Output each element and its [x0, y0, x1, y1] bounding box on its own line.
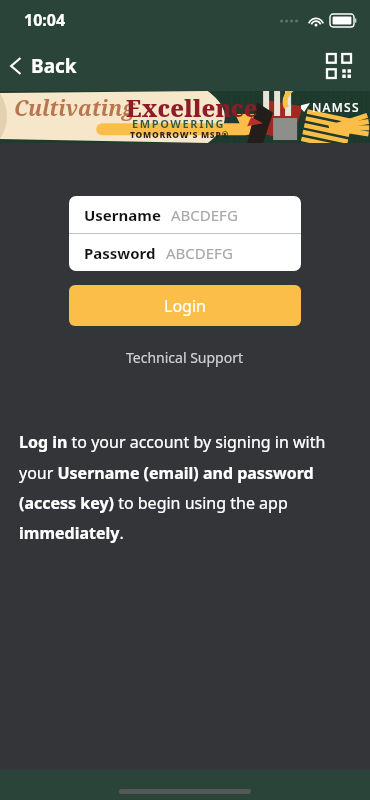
button[interactable]: Login — [69, 285, 301, 326]
button[interactable]: Username — [69, 196, 301, 233]
staticText: TOMORROW'S MSP® — [130, 129, 230, 141]
staticText: Cultivating — [14, 94, 135, 123]
staticText: 10:04 — [24, 9, 66, 31]
button[interactable]: Scan QR code — [318, 45, 360, 87]
staticText: Username — [84, 205, 161, 225]
staticText: NAMSS — [312, 99, 360, 115]
button[interactable]: Technical Support — [114, 344, 256, 371]
staticText: Excellence — [126, 92, 258, 123]
staticText: Back — [31, 53, 77, 79]
staticText: Password — [84, 243, 156, 263]
staticText: EMPOWERING — [132, 116, 226, 131]
staticText: Login — [164, 295, 206, 317]
button[interactable]: Back — [0, 44, 89, 88]
staticText: ABCDEFG — [171, 205, 238, 225]
staticText: Technical Support — [126, 348, 244, 367]
staticText: Log in to your account by signing in wit… — [19, 431, 351, 543]
staticText: ABCDEFG — [166, 243, 233, 263]
button[interactable]: Password — [69, 234, 301, 271]
